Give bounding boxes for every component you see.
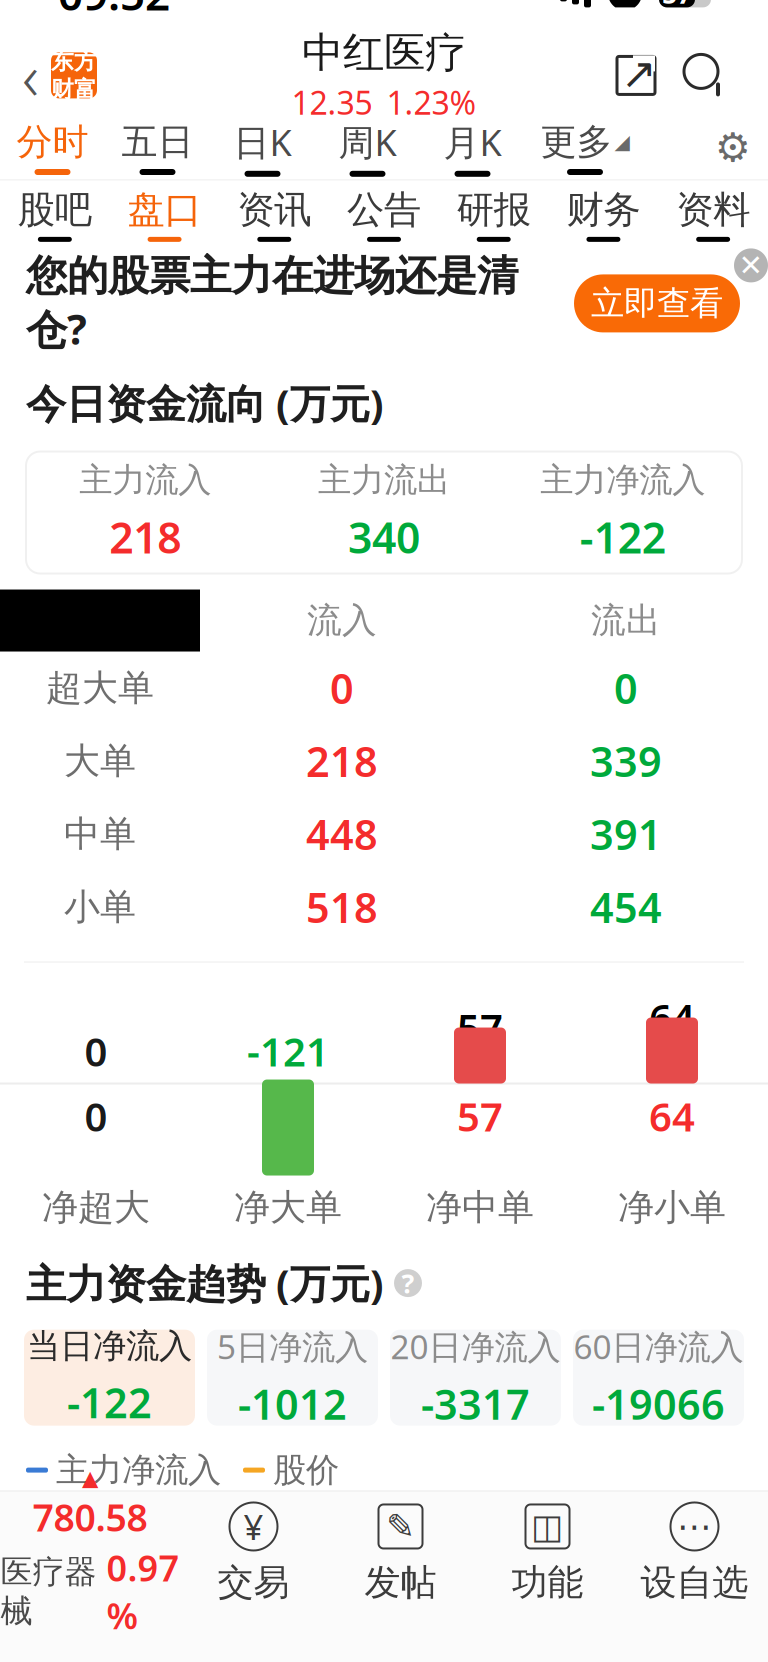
staticText: 中单 xyxy=(64,812,136,856)
staticText: 64 xyxy=(649,1089,695,1143)
button[interactable]: Close ad xyxy=(734,248,768,282)
staticText: -122 xyxy=(580,509,666,565)
staticText: 主力流入 xyxy=(79,460,211,501)
staticText: 218 xyxy=(109,509,181,565)
staticText: 57 xyxy=(457,1089,503,1143)
staticText: 股价 xyxy=(273,1450,339,1490)
staticText: ◫ xyxy=(531,1507,564,1546)
staticText: 公告 xyxy=(347,187,421,233)
staticText: 主力净流入 xyxy=(56,1450,221,1490)
staticText: 超大单 xyxy=(46,666,154,710)
button[interactable]: 公告 xyxy=(329,180,439,248)
staticText: ⋯ xyxy=(677,1507,712,1546)
staticText: 64 xyxy=(649,991,695,1044)
button[interactable]: 研报 xyxy=(439,180,549,248)
button[interactable]: 20日净流入 xyxy=(390,1330,561,1426)
staticText: 当日净流入 xyxy=(27,1326,192,1367)
staticText: -121 xyxy=(247,1024,329,1077)
staticText: ✎ xyxy=(386,1507,415,1546)
staticText: 1.23% xyxy=(386,81,476,123)
staticText: 分时 xyxy=(16,120,88,164)
button[interactable]: 月K xyxy=(420,115,525,179)
button[interactable]: 当日净流入 xyxy=(24,1330,195,1426)
staticText: 20日净流入 xyxy=(390,1324,560,1368)
staticText: 立即查看 xyxy=(591,283,723,324)
staticText: 09:52 xyxy=(58,0,170,23)
staticText: 518 xyxy=(306,880,378,934)
button[interactable]: 资料 xyxy=(658,180,768,248)
staticText: 218 xyxy=(306,734,378,788)
button[interactable]: 60日净流入 xyxy=(573,1330,744,1426)
button[interactable]: 分时 xyxy=(0,115,105,179)
staticText: 净大单 xyxy=(234,1185,342,1230)
staticText: 0.97% xyxy=(106,1544,179,1639)
staticText: 448 xyxy=(306,807,378,861)
staticText: 340 xyxy=(348,509,420,565)
staticText: ▲ xyxy=(82,1466,98,1490)
staticText: 大单 xyxy=(64,739,136,783)
staticText: ¥ xyxy=(243,1503,263,1549)
button[interactable]: 盘口 xyxy=(110,180,219,248)
staticText: 资料 xyxy=(676,187,750,233)
staticText: 净超大 xyxy=(42,1185,150,1230)
staticText: 小单 xyxy=(64,885,136,929)
staticText: 月K xyxy=(443,118,501,166)
staticText: 454 xyxy=(590,880,662,934)
staticText: 日K xyxy=(233,118,291,166)
button[interactable]: 日K xyxy=(210,115,315,179)
staticText: 医疗器械 xyxy=(0,1552,96,1631)
staticText: ‹ xyxy=(22,33,39,118)
staticText: 流入 xyxy=(307,599,377,642)
button[interactable]: 立即查看 xyxy=(574,274,740,332)
button[interactable]: Search xyxy=(668,42,742,108)
staticText: 流出 xyxy=(591,599,661,642)
staticText: 资讯 xyxy=(237,187,311,233)
button[interactable]: 股吧 xyxy=(0,180,110,248)
staticText: 发帖 xyxy=(364,1560,436,1605)
button[interactable]: Share xyxy=(604,43,668,107)
button[interactable]: ◫ xyxy=(474,1493,621,1613)
staticText: -19066 xyxy=(592,1376,725,1431)
staticText: 周K xyxy=(338,118,396,166)
staticText: -122 xyxy=(67,1375,152,1430)
staticText: 0 xyxy=(84,1089,107,1143)
staticText: ↗ xyxy=(621,49,657,98)
staticText: 780.58 xyxy=(32,1492,147,1542)
staticText: 0 xyxy=(84,1024,107,1077)
staticText: 盘口 xyxy=(128,187,202,233)
staticText: 净中单 xyxy=(426,1185,534,1230)
staticText: 57 xyxy=(457,1001,503,1054)
button[interactable]: ▲ xyxy=(0,1493,180,1613)
button[interactable]: ✎ xyxy=(327,1493,474,1613)
staticText: 您的股票主力在进场还是清仓? xyxy=(26,251,518,356)
button[interactable]: 更多 xyxy=(525,115,645,179)
staticText: 净小单 xyxy=(618,1185,726,1230)
button[interactable]: Back xyxy=(0,25,97,126)
button[interactable]: 五日 xyxy=(105,115,210,179)
staticText: 主力净流入 xyxy=(540,460,705,501)
staticText: 设自选 xyxy=(640,1560,748,1605)
staticText: -3317 xyxy=(421,1376,530,1431)
staticText: 12.35 xyxy=(291,81,372,123)
staticText: 391 xyxy=(590,807,662,861)
staticText: 57 xyxy=(662,0,692,11)
staticText: ✕ xyxy=(738,249,763,282)
staticText: 东方 xyxy=(51,48,97,75)
button[interactable]: 周K xyxy=(315,115,420,179)
button[interactable]: Help xyxy=(394,1269,422,1297)
staticText: 0 xyxy=(330,661,354,715)
staticText: 主力流出 xyxy=(318,460,450,501)
staticText: 5日净流入 xyxy=(217,1324,368,1368)
button[interactable]: 财务 xyxy=(549,180,658,248)
button[interactable]: ¥ xyxy=(180,1493,327,1613)
staticText: 更多 xyxy=(540,120,612,164)
button[interactable]: Chart settings xyxy=(698,115,768,179)
staticText: 股吧 xyxy=(18,187,92,233)
staticText: ◢ xyxy=(614,131,629,153)
button[interactable]: 5日净流入 xyxy=(207,1330,378,1426)
staticText: 五日 xyxy=(121,120,193,164)
staticText: -1012 xyxy=(238,1376,347,1431)
button[interactable]: ⋯ xyxy=(621,1493,768,1613)
staticText: 339 xyxy=(590,734,662,788)
button[interactable]: 资讯 xyxy=(219,180,329,248)
